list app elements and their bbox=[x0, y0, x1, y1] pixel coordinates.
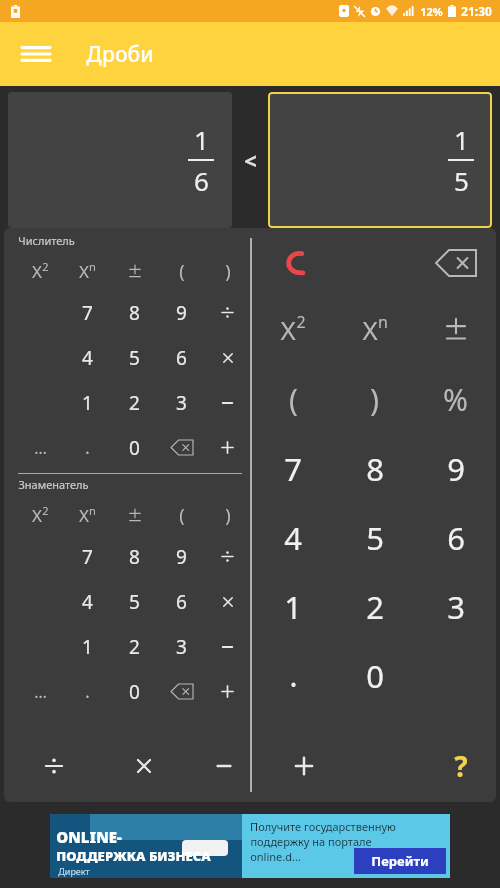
button[interactable]: ) bbox=[205, 496, 250, 534]
staticText: 7 bbox=[82, 544, 93, 570]
staticText: ) bbox=[225, 259, 231, 284]
staticText: 5 bbox=[454, 163, 469, 198]
button[interactable]: 1 bbox=[268, 92, 492, 228]
button[interactable]: . bbox=[252, 641, 334, 710]
button[interactable] bbox=[205, 335, 250, 380]
button[interactable]: 6 bbox=[158, 579, 205, 624]
button[interactable] bbox=[205, 624, 250, 669]
staticText: n bbox=[89, 259, 96, 274]
button[interactable]: Plus bbox=[264, 730, 344, 802]
button[interactable]: 5 bbox=[334, 503, 415, 572]
button[interactable]: X bbox=[17, 252, 64, 290]
button[interactable]: … bbox=[17, 425, 64, 470]
button[interactable]: 5 bbox=[111, 579, 158, 624]
staticText: 2 bbox=[366, 586, 384, 628]
button[interactable]: 3 bbox=[158, 624, 205, 669]
staticText: 6 bbox=[447, 517, 465, 559]
button[interactable]: 4 bbox=[252, 503, 334, 572]
button[interactable]: 9 bbox=[158, 290, 205, 335]
staticText: 5 bbox=[366, 517, 384, 559]
button[interactable]: 2 bbox=[111, 624, 158, 669]
button[interactable] bbox=[205, 534, 250, 579]
button[interactable]: ( bbox=[158, 496, 205, 534]
staticText: 9 bbox=[447, 448, 465, 490]
button[interactable]: X bbox=[252, 294, 334, 364]
button[interactable]: Backspace bbox=[415, 232, 496, 294]
button[interactable]: Plus minus bbox=[111, 496, 158, 534]
button[interactable]: ( bbox=[252, 364, 334, 434]
button[interactable]: Menu bbox=[18, 36, 54, 72]
staticText: 6 bbox=[194, 163, 209, 198]
button[interactable]: 7 bbox=[64, 290, 111, 335]
staticText: 3 bbox=[447, 586, 465, 628]
button[interactable]: 1 bbox=[8, 92, 232, 228]
staticText: ) bbox=[225, 503, 231, 528]
button[interactable]: 0 bbox=[334, 641, 415, 710]
staticText: 7 bbox=[284, 448, 302, 490]
button[interactable]: 3 bbox=[158, 380, 205, 425]
staticText: 8 bbox=[129, 300, 140, 326]
button[interactable]: Plus minus bbox=[415, 294, 496, 364]
button[interactable] bbox=[205, 380, 250, 425]
button[interactable]: . bbox=[64, 669, 111, 714]
button[interactable]: Backspace bbox=[158, 669, 205, 714]
button[interactable]: 7 bbox=[64, 534, 111, 579]
button[interactable]: 2 bbox=[111, 380, 158, 425]
button[interactable]: Divide bbox=[4, 730, 104, 802]
button[interactable]: ONLINE- bbox=[50, 814, 450, 878]
button[interactable]: Help bbox=[426, 730, 496, 802]
staticText: ? bbox=[454, 747, 468, 785]
button[interactable]: 6 bbox=[158, 335, 205, 380]
button[interactable]: Plus minus bbox=[111, 252, 158, 290]
button[interactable] bbox=[205, 579, 250, 624]
button[interactable]: Minus bbox=[184, 730, 264, 802]
button[interactable]: 2 bbox=[334, 572, 415, 641]
button[interactable]: 3 bbox=[415, 572, 496, 641]
staticText: 4 bbox=[284, 517, 302, 559]
button[interactable]: … bbox=[17, 669, 64, 714]
staticText: ONLINE- bbox=[56, 827, 122, 847]
button[interactable]: 8 bbox=[111, 534, 158, 579]
button[interactable] bbox=[205, 669, 250, 714]
button[interactable]: X bbox=[64, 252, 111, 290]
button[interactable]: 0 bbox=[111, 425, 158, 470]
staticText: 2 bbox=[296, 311, 306, 333]
button[interactable]: 8 bbox=[334, 434, 415, 503]
button[interactable]: X bbox=[17, 496, 64, 534]
button[interactable]: 0 bbox=[111, 669, 158, 714]
button[interactable]: 4 bbox=[64, 579, 111, 624]
button[interactable] bbox=[205, 425, 250, 470]
staticText: Перейти bbox=[371, 852, 429, 870]
button[interactable] bbox=[205, 290, 250, 335]
staticText: 1 bbox=[82, 390, 93, 416]
button[interactable]: Перейти bbox=[354, 848, 446, 874]
staticText: 6 bbox=[176, 589, 187, 615]
staticText: 2 bbox=[129, 634, 140, 660]
button[interactable]: ) bbox=[334, 364, 415, 434]
button[interactable]: Backspace bbox=[158, 425, 205, 470]
staticText: ( bbox=[179, 259, 185, 284]
button[interactable]: X bbox=[334, 294, 415, 364]
button[interactable]: 5 bbox=[111, 335, 158, 380]
button[interactable]: 1 bbox=[64, 380, 111, 425]
button[interactable]: Clear bbox=[252, 232, 334, 294]
button[interactable]: 6 bbox=[415, 503, 496, 572]
staticText: ) bbox=[370, 379, 379, 420]
button[interactable]: ) bbox=[205, 252, 250, 290]
button[interactable]: 4 bbox=[64, 335, 111, 380]
button[interactable]: ( bbox=[158, 252, 205, 290]
button[interactable]: 9 bbox=[415, 434, 496, 503]
staticText: 2 bbox=[129, 390, 140, 416]
button[interactable]: 9 bbox=[158, 534, 205, 579]
staticText: X bbox=[280, 312, 296, 347]
button[interactable]: 7 bbox=[252, 434, 334, 503]
button[interactable]: 8 bbox=[111, 290, 158, 335]
button[interactable]: . bbox=[64, 425, 111, 470]
button[interactable]: 1 bbox=[64, 624, 111, 669]
button[interactable]: Multiply bbox=[104, 730, 184, 802]
button[interactable]: X bbox=[64, 496, 111, 534]
staticText: 1 bbox=[82, 634, 93, 660]
button[interactable]: % bbox=[415, 364, 496, 434]
button[interactable]: 1 bbox=[252, 572, 334, 641]
staticText: ( bbox=[289, 379, 298, 420]
